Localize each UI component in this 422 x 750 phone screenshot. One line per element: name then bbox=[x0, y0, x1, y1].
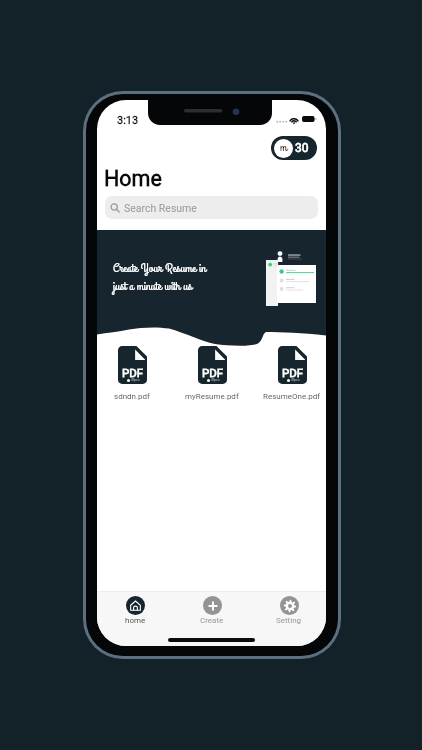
staticText: sdndn.pdf bbox=[114, 392, 150, 401]
button[interactable]: Search Resume bbox=[105, 196, 318, 219]
other: Setting bbox=[280, 596, 299, 615]
staticText: 3:13 bbox=[117, 114, 139, 127]
staticText: 30 bbox=[295, 141, 309, 155]
other: Create bbox=[203, 596, 222, 615]
staticText: PDF bbox=[202, 366, 224, 379]
other: Home bbox=[126, 596, 145, 615]
staticText: 45pcs bbox=[211, 378, 220, 382]
staticText: home bbox=[125, 616, 146, 625]
button[interactable]: Home bbox=[111, 596, 159, 625]
button[interactable]: PDF bbox=[257, 346, 326, 401]
staticText: PDF bbox=[122, 366, 144, 379]
staticText: PDF bbox=[282, 366, 304, 379]
staticText: Home bbox=[104, 166, 162, 191]
button[interactable]: PDF bbox=[177, 346, 247, 401]
button[interactable]: PDF bbox=[97, 346, 167, 401]
button[interactable]: Create bbox=[188, 596, 236, 625]
button[interactable]: Setting bbox=[265, 596, 313, 625]
staticText: 45pcs bbox=[291, 378, 300, 382]
button[interactable]: Coins 30 bbox=[271, 136, 317, 160]
staticText: ResumeOne.pdf bbox=[263, 392, 321, 401]
staticText: 45pcs bbox=[131, 378, 140, 382]
staticText: Create Your Resume in bbox=[113, 260, 206, 278]
staticText: m bbox=[280, 139, 288, 157]
staticText: just a minute with us bbox=[113, 278, 193, 296]
staticText: Setting bbox=[276, 616, 302, 625]
staticText: Create bbox=[200, 616, 224, 625]
staticText: Search Resume bbox=[124, 202, 197, 214]
staticText: myResume.pdf bbox=[185, 392, 239, 401]
